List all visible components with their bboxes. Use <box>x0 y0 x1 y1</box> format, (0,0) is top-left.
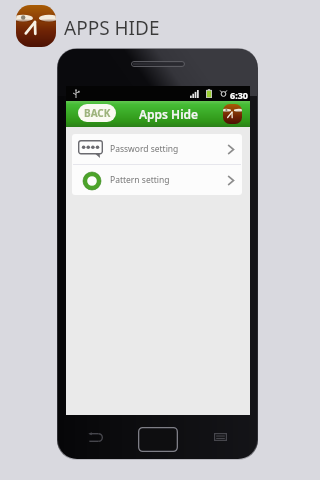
button[interactable]: Apps Hide app icon <box>223 104 242 124</box>
staticText: APPS HIDE <box>64 15 160 41</box>
button[interactable]: Menu <box>214 433 227 441</box>
staticText: BACK <box>84 106 111 120</box>
button[interactable]: BACK <box>78 104 116 122</box>
staticText: Apps Hide <box>139 106 199 122</box>
button[interactable]: Back <box>88 433 105 442</box>
staticText: 6:30 <box>230 89 248 101</box>
staticText: Password setting <box>110 143 179 155</box>
button[interactable]: Home <box>138 427 178 452</box>
button[interactable]: Password setting <box>72 134 242 164</box>
button[interactable]: Pattern setting <box>72 165 242 195</box>
staticText: Pattern setting <box>110 174 170 186</box>
